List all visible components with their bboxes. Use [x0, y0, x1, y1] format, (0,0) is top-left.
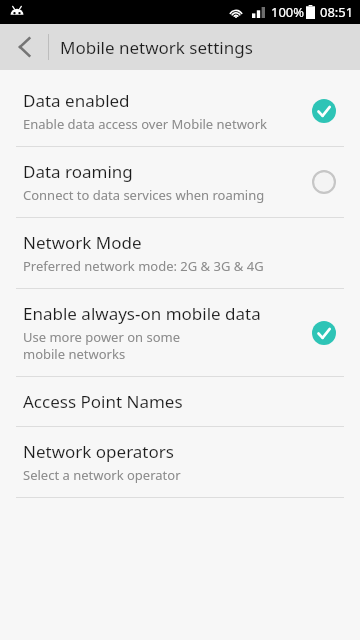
button[interactable]: Network operators [0, 427, 360, 497]
staticText: Use more power on some mobile networks [23, 328, 191, 363]
button[interactable]: Access Point Names [0, 377, 360, 426]
staticText: 08:51 [320, 3, 354, 21]
staticText: Enable always-on mobile data [23, 302, 261, 325]
button[interactable]: Network Mode [0, 218, 360, 288]
staticText: Mobile network settings [60, 36, 253, 59]
staticText: Network Mode [23, 231, 142, 254]
button[interactable]: Enable always-on mobile data [0, 289, 360, 376]
button[interactable]: Data roaming [0, 147, 360, 217]
button[interactable]: Enable always-on mobile data on [304, 313, 344, 353]
button[interactable]: Data enabled on [304, 91, 344, 131]
staticText: Data roaming [23, 160, 133, 183]
staticText: Network operators [23, 440, 174, 463]
staticText: Access Point Names [23, 390, 183, 413]
staticText: Data enabled [23, 89, 130, 112]
button[interactable]: Data enabled [0, 76, 360, 146]
staticText: Connect to data services when roaming [23, 186, 294, 204]
staticText: Select a network operator [23, 466, 344, 484]
button[interactable]: Back [0, 24, 48, 70]
staticText: Preferred network mode: 2G & 3G & 4G [23, 257, 344, 275]
staticText: 100% [271, 3, 305, 21]
staticText: Enable data access over Mobile network [23, 115, 294, 133]
button[interactable]: Data roaming off [304, 162, 344, 202]
